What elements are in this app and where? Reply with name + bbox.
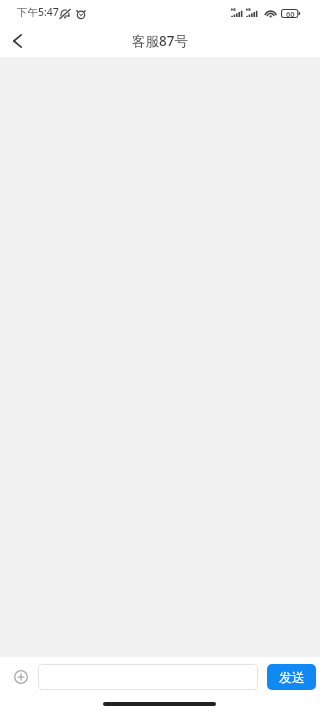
staticText: 发送 [279,669,305,685]
button[interactable]: Back [0,24,34,57]
button[interactable]: Add attachment [7,664,35,690]
button[interactable]: 发送 [267,664,316,690]
staticText: 客服87号 [132,32,188,50]
staticText: 下午5:47 [17,5,59,19]
staticText: 60 [286,9,295,18]
button[interactable] [38,664,258,690]
